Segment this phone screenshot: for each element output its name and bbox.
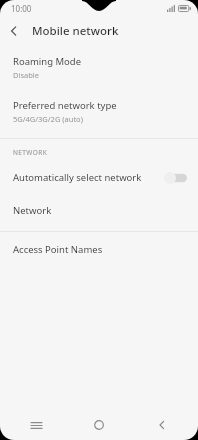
button[interactable]: Access Point Names — [0, 232, 198, 267]
staticText: Roaming Mode — [13, 55, 82, 68]
staticText: NETWORK — [13, 148, 48, 157]
staticText: Disable — [13, 70, 39, 80]
staticText: 10:00 — [11, 3, 32, 14]
button[interactable]: Preferred network type — [0, 89, 198, 133]
staticText: Network — [13, 204, 52, 217]
button[interactable]: Back — [135, 410, 189, 440]
button[interactable]: Automatically select network toggle — [164, 172, 187, 184]
button[interactable]: Roaming Mode — [0, 45, 198, 89]
staticText: Preferred network type — [13, 99, 117, 112]
button[interactable]: Automatically select network — [0, 162, 198, 193]
staticText: Automatically select network — [13, 171, 158, 184]
staticText: Mobile network — [32, 23, 119, 39]
button[interactable]: Home — [72, 410, 126, 440]
button[interactable]: Back — [0, 17, 28, 45]
button[interactable]: Network — [0, 193, 198, 228]
staticText: Access Point Names — [13, 243, 103, 256]
button[interactable]: Recent apps — [9, 410, 63, 440]
staticText: 5G/4G/3G/2G (auto) — [13, 114, 83, 124]
